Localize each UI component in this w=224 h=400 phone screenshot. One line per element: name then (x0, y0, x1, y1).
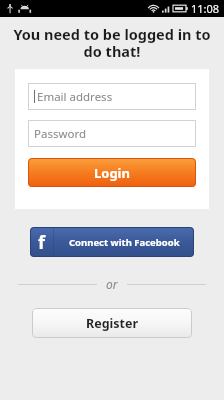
button[interactable]: Login (28, 158, 196, 187)
button[interactable]: f (30, 227, 194, 257)
staticText: Connect with Facebook (69, 236, 180, 249)
staticText: f (38, 230, 45, 255)
button[interactable]: Password (28, 120, 196, 147)
button[interactable]: Register (32, 308, 192, 338)
staticText: Login (94, 164, 130, 182)
staticText: or (106, 276, 118, 292)
button[interactable]: Email address (28, 83, 196, 110)
staticText: You need to be logged in to do that! (12, 24, 212, 61)
staticText: Register (86, 315, 139, 332)
staticText: 11:08 (191, 1, 220, 16)
staticText: Email address (37, 89, 113, 105)
staticText: Password (34, 126, 87, 142)
